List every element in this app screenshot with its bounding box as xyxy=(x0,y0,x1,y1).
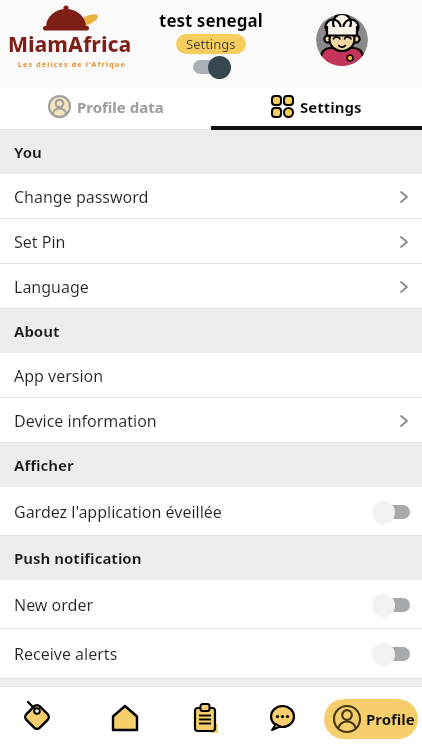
button[interactable]: Settings xyxy=(176,34,246,54)
staticText: Push notification xyxy=(14,548,142,568)
staticText: Receive alerts xyxy=(14,643,118,665)
staticText: Profile data xyxy=(77,97,164,117)
staticText: Settings xyxy=(300,97,362,117)
staticText: Les délices de l'Afrique xyxy=(18,60,126,70)
staticText: MiamAfrica xyxy=(8,30,132,59)
button[interactable]: Profile data xyxy=(0,88,211,125)
button[interactable]: Gardez l'application éveillée xyxy=(0,487,422,536)
button[interactable]: Set Pin xyxy=(0,219,422,264)
staticText: App version xyxy=(14,365,104,387)
staticText: You xyxy=(14,142,42,162)
staticText: About xyxy=(14,321,60,341)
staticText: Profile xyxy=(366,709,415,729)
button[interactable]: New order xyxy=(0,580,422,629)
staticText: Afficher xyxy=(14,455,74,475)
button[interactable]: Settings xyxy=(211,88,422,125)
button[interactable] xyxy=(372,500,412,524)
staticText: test senegal xyxy=(159,9,263,32)
staticText: Gardez l'application éveillée xyxy=(14,501,222,523)
button[interactable] xyxy=(191,55,231,79)
button[interactable]: Change password xyxy=(0,174,422,219)
staticText: Language xyxy=(14,276,89,298)
button[interactable]: Device information xyxy=(0,398,422,443)
button[interactable] xyxy=(189,702,221,734)
button[interactable]: Receive alerts xyxy=(0,629,422,679)
button[interactable] xyxy=(372,642,412,666)
staticText: New order xyxy=(14,594,94,616)
button[interactable] xyxy=(316,14,368,66)
button[interactable]: Language xyxy=(0,264,422,309)
button[interactable]: App version xyxy=(0,353,422,398)
button[interactable] xyxy=(20,700,54,734)
button[interactable] xyxy=(109,702,141,734)
button[interactable] xyxy=(267,702,299,734)
staticText: Settings xyxy=(186,35,236,53)
staticText: Change password xyxy=(14,186,149,208)
staticText: Set Pin xyxy=(14,231,66,253)
button[interactable]: Profile xyxy=(324,699,418,739)
staticText: Device information xyxy=(14,410,157,432)
button[interactable] xyxy=(372,593,412,617)
